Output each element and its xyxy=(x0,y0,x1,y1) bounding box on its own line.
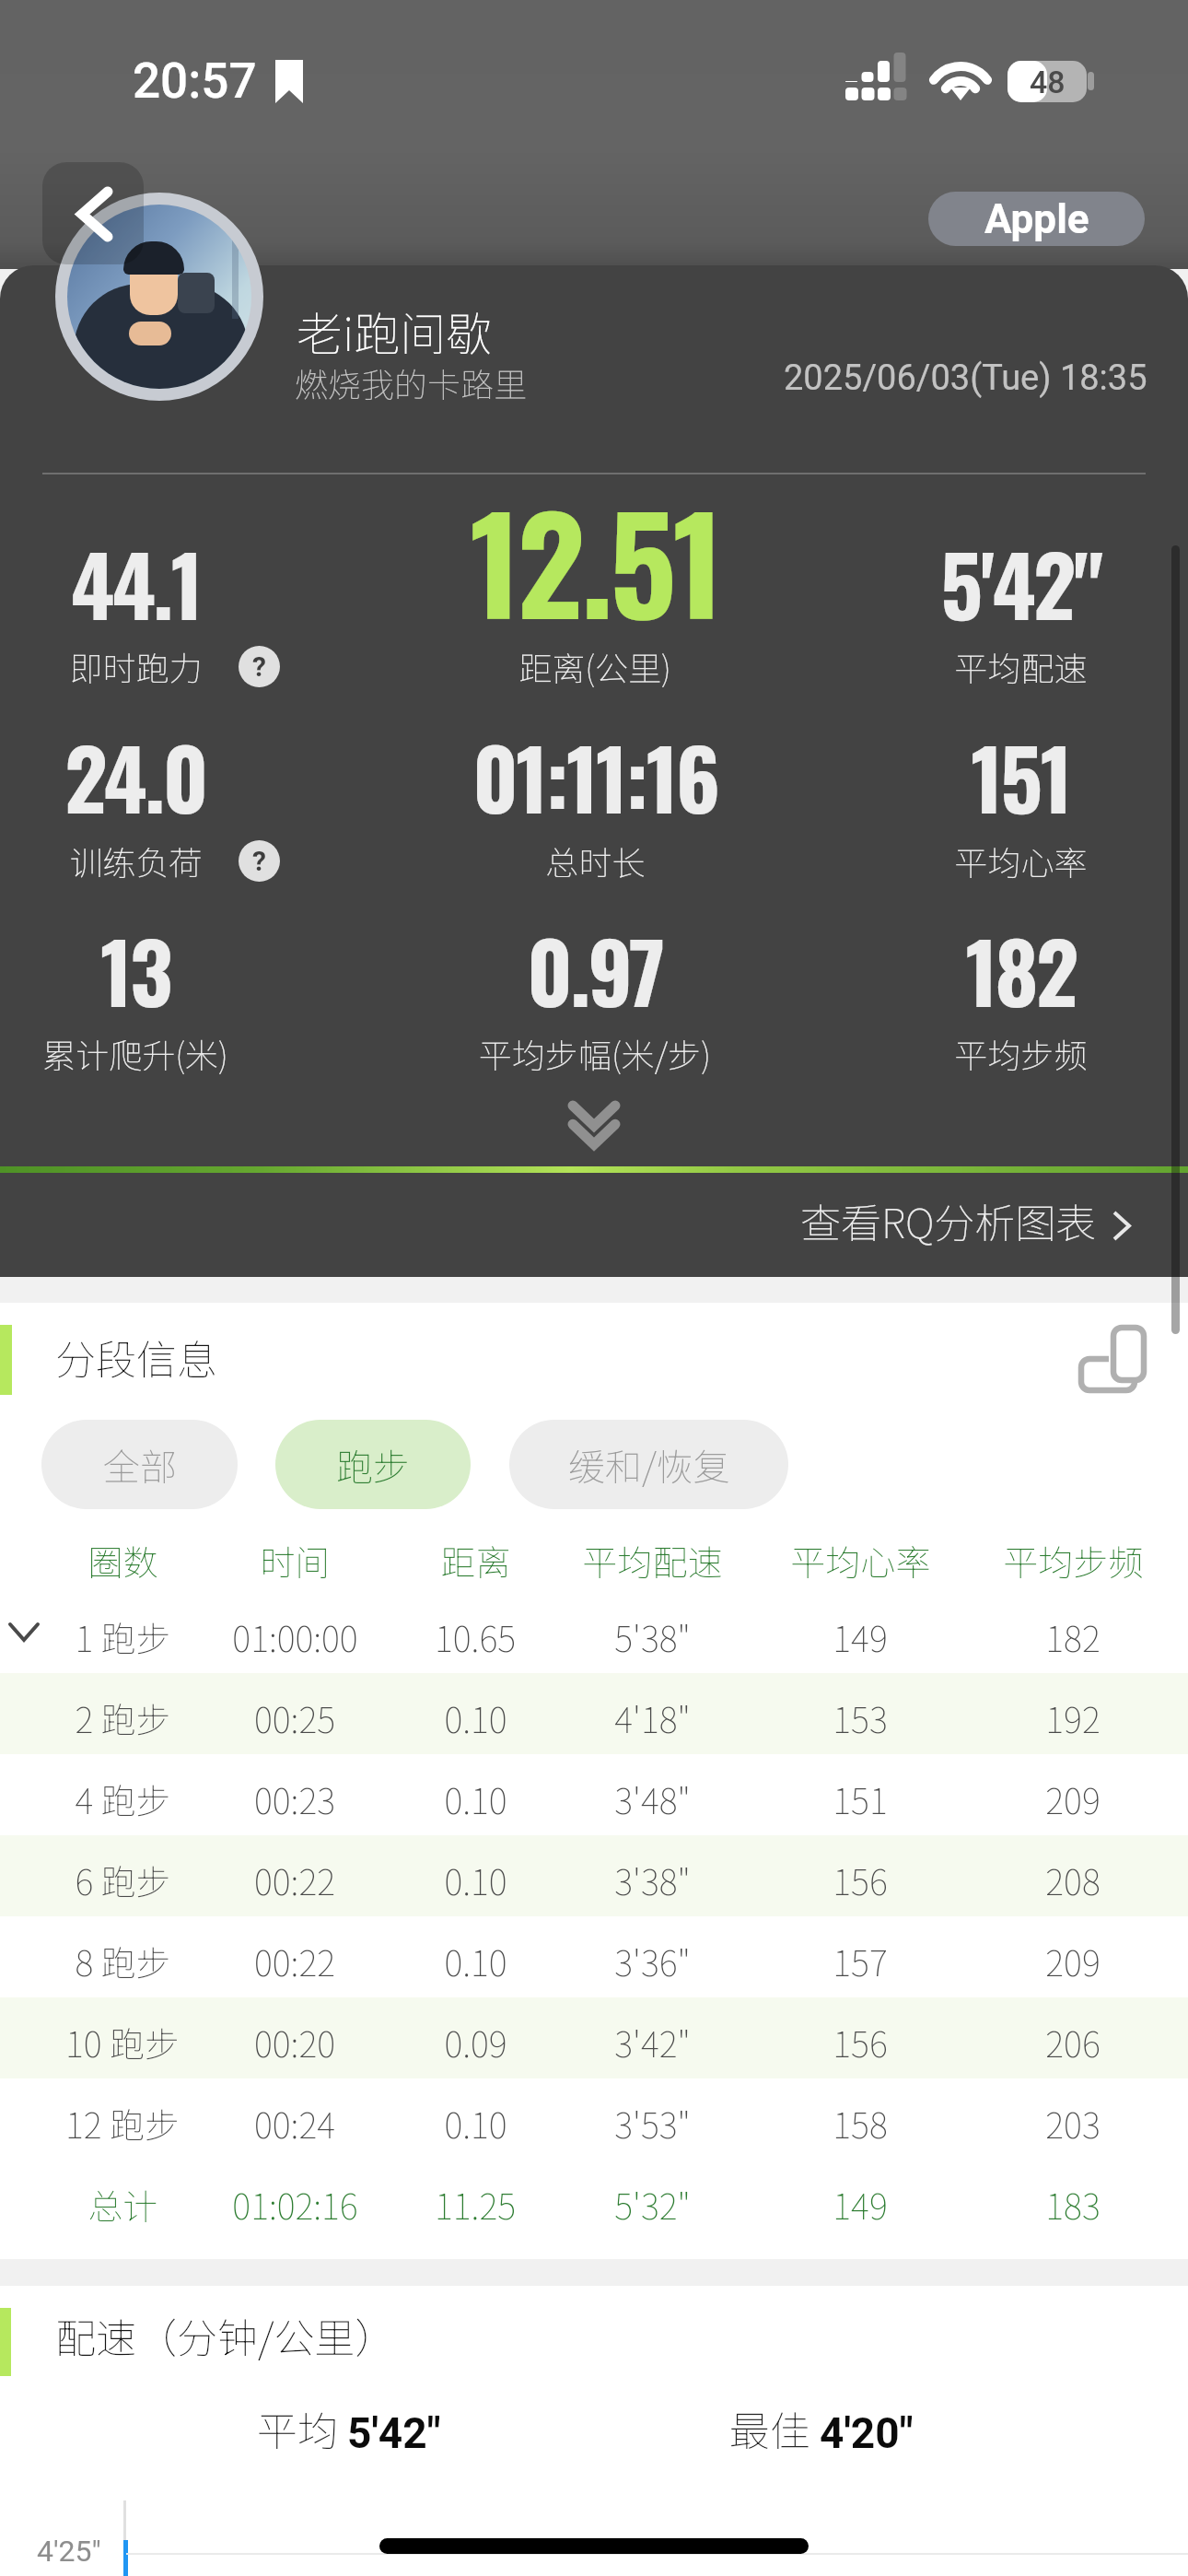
staticText: 查看RQ分析图表 xyxy=(800,1191,1097,1250)
staticText: 00:22 xyxy=(254,1855,335,1905)
staticText: 208 xyxy=(1045,1855,1101,1905)
staticText: 0.10 xyxy=(444,1855,507,1905)
staticText: 00:20 xyxy=(254,2017,335,2067)
staticText: 平均配速 xyxy=(582,1535,723,1586)
staticText: 0.10 xyxy=(444,1774,507,1824)
staticText: 平均步频 xyxy=(1003,1535,1144,1586)
button[interactable] xyxy=(0,1754,1188,1835)
staticText: ? xyxy=(252,845,266,877)
staticText: 157 xyxy=(833,1936,888,1986)
staticText: 10 跑步 xyxy=(65,2017,180,2067)
staticText: 5'42" xyxy=(347,2408,441,2458)
staticText: 缓和/恢复 xyxy=(568,1438,730,1492)
staticText: 153 xyxy=(833,1692,888,1743)
staticText: 0.09 xyxy=(444,2017,507,2067)
staticText: 00:24 xyxy=(254,2098,335,2149)
staticText: 12 跑步 xyxy=(65,2098,180,2149)
staticText: 0.10 xyxy=(444,1936,507,1986)
staticText: 跑步 xyxy=(336,1438,410,1492)
staticText: 10.65 xyxy=(435,1611,516,1662)
button[interactable] xyxy=(55,193,263,401)
staticText: 0.10 xyxy=(444,1692,507,1743)
staticText: 平均心率 xyxy=(790,1535,931,1586)
staticText: 182 xyxy=(1045,1611,1101,1662)
staticText: Apple xyxy=(984,195,1089,243)
button[interactable] xyxy=(0,1835,1188,1916)
staticText: 203 xyxy=(1045,2098,1101,2149)
staticText: 累计爬升(米) xyxy=(42,1029,228,1077)
staticText: 00:22 xyxy=(254,1936,335,1986)
button[interactable] xyxy=(0,1916,1188,1997)
staticText: 156 xyxy=(833,2017,888,2067)
staticText: 3'53" xyxy=(614,2098,691,2149)
staticText: 平均配速 xyxy=(954,642,1088,690)
staticText: 0.97 xyxy=(527,908,663,1031)
staticText: 01:00:00 xyxy=(232,1611,358,1662)
staticText: 13 xyxy=(100,908,170,1031)
staticText: 12.51 xyxy=(470,462,720,627)
staticText: 5'38" xyxy=(614,1611,691,1662)
staticText: 配速（分钟/公里） xyxy=(55,2306,396,2365)
staticText: 149 xyxy=(833,1611,888,1662)
button[interactable]: Expand xyxy=(537,1093,651,1159)
button[interactable]: Back xyxy=(42,162,144,264)
staticText: 燃烧我的卡路里 xyxy=(295,358,528,406)
staticText: 平均步幅(米/步) xyxy=(479,1029,711,1077)
button[interactable]: 缓和/恢复 xyxy=(509,1420,788,1509)
button[interactable]: Rotate screen xyxy=(1063,1314,1162,1404)
staticText: 平均步频 xyxy=(954,1029,1088,1077)
staticText: 4'18" xyxy=(614,1692,691,1743)
button[interactable] xyxy=(0,1173,1188,1277)
staticText: 全部 xyxy=(103,1438,177,1492)
staticText: 圈数 xyxy=(87,1535,158,1586)
staticText: 8 跑步 xyxy=(75,1936,171,1986)
staticText: 151 xyxy=(833,1774,888,1824)
staticText: ? xyxy=(252,650,266,683)
staticText: 44.1 xyxy=(71,521,201,644)
staticText: 4'25" xyxy=(37,2534,101,2569)
staticText: 149 xyxy=(833,2179,888,2230)
staticText: 2025/06/03(Tue) 18:35 xyxy=(784,357,1147,399)
staticText: 5'42" xyxy=(940,521,1101,644)
staticText: 209 xyxy=(1045,1774,1101,1824)
staticText: 0.10 xyxy=(444,2098,507,2149)
staticText: 总计 xyxy=(87,2179,158,2230)
staticText: 距离 xyxy=(440,1535,511,1586)
staticText: 00:23 xyxy=(254,1774,335,1824)
staticText: 209 xyxy=(1045,1936,1101,1986)
button[interactable] xyxy=(0,1592,1188,1673)
staticText: 平均心率 xyxy=(954,837,1088,884)
staticText: 00:25 xyxy=(254,1692,335,1743)
staticText: 151 xyxy=(971,715,1070,837)
staticText: 6 跑步 xyxy=(75,1855,171,1905)
button[interactable]: Help xyxy=(239,840,280,882)
button[interactable]: 跑步 xyxy=(275,1420,471,1509)
staticText: 20:57 xyxy=(133,53,257,110)
staticText: 206 xyxy=(1045,2017,1101,2067)
button[interactable] xyxy=(0,1997,1188,2078)
staticText: 3'36" xyxy=(614,1936,691,1986)
button[interactable]: Help xyxy=(239,646,280,687)
staticText: 4'20" xyxy=(820,2408,914,2458)
button[interactable]: 全部 xyxy=(41,1420,238,1509)
staticText: 156 xyxy=(833,1855,888,1905)
staticText: 192 xyxy=(1045,1692,1101,1743)
staticText: 01:11:16 xyxy=(472,715,718,837)
staticText: 最佳 xyxy=(729,2399,820,2458)
button[interactable] xyxy=(0,1520,1188,1592)
staticText: 5'32" xyxy=(614,2179,691,2230)
staticText: 182 xyxy=(965,908,1077,1031)
button[interactable] xyxy=(0,2078,1188,2160)
staticText: 平均 xyxy=(257,2399,347,2458)
staticText: 24.0 xyxy=(64,715,206,837)
staticText: 训练负荷 xyxy=(69,837,203,884)
staticText: 3'48" xyxy=(614,1774,691,1824)
staticText: 老i跑间歇 xyxy=(297,298,493,364)
button[interactable]: Apple xyxy=(928,192,1145,246)
staticText: 总时长 xyxy=(545,837,646,884)
button[interactable] xyxy=(0,2160,1188,2241)
staticText: 01:02:16 xyxy=(232,2179,358,2230)
button[interactable] xyxy=(0,1673,1188,1754)
staticText: 48 xyxy=(1030,64,1066,100)
staticText: 分段信息 xyxy=(55,1328,217,1387)
